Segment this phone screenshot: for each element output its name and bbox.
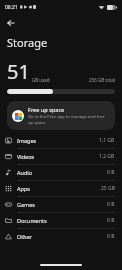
- staticText: GB used: [32, 77, 50, 83]
- staticText: 0 B: [107, 217, 115, 224]
- button[interactable]: Free up space: [7, 101, 115, 130]
- button[interactable]: Other: [0, 229, 122, 244]
- button[interactable]: Apps: [0, 181, 122, 196]
- button[interactable]: Videos: [0, 149, 122, 164]
- button[interactable]: Audio: [0, 165, 122, 180]
- staticText: Documents: [17, 217, 47, 224]
- button[interactable]: Documents: [0, 213, 122, 228]
- staticText: Apps: [17, 185, 30, 192]
- staticText: 25 GB: [101, 185, 115, 192]
- staticText: Go to the Files app to manage and free u…: [28, 114, 110, 125]
- staticText: 0 B: [107, 233, 115, 240]
- button[interactable]: Games: [0, 197, 122, 212]
- staticText: Audio: [17, 169, 33, 176]
- staticText: Games: [17, 201, 35, 208]
- staticText: 256 GB total: [89, 77, 115, 83]
- button[interactable]: Back: [4, 16, 18, 30]
- staticText: Storage: [7, 35, 48, 50]
- staticText: Videos: [17, 153, 35, 160]
- staticText: Images: [17, 137, 37, 144]
- staticText: Free up space: [28, 106, 65, 113]
- staticText: 1,2 GB: [99, 153, 115, 160]
- staticText: 1,1 GB: [99, 137, 115, 144]
- staticText: 51: [7, 58, 30, 85]
- staticText: 0 B: [107, 201, 115, 208]
- button[interactable]: Images: [0, 133, 122, 148]
- staticText: 06:21: [5, 4, 18, 11]
- staticText: Other: [17, 233, 33, 240]
- staticText: 0 B: [107, 169, 115, 176]
